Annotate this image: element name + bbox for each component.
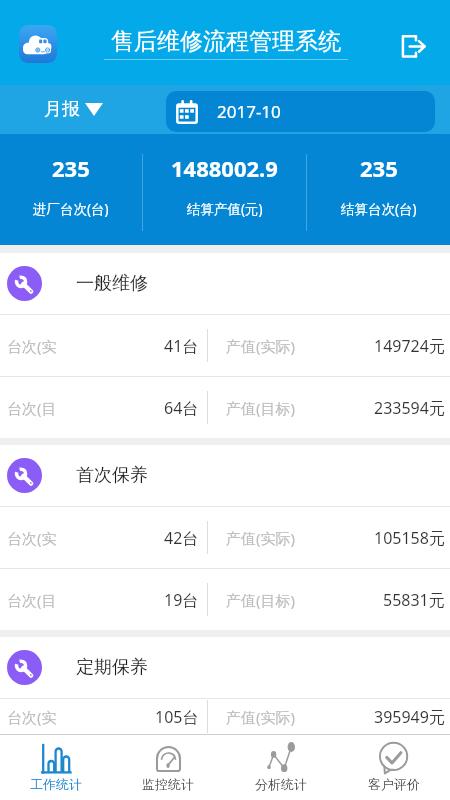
staticText: 41台 bbox=[164, 335, 199, 357]
staticText: 台次(实 bbox=[7, 707, 57, 727]
button[interactable]: 工作统计 bbox=[0, 735, 112, 800]
staticText: 台次(目 bbox=[7, 590, 57, 610]
button[interactable]: 台次(目 bbox=[0, 377, 450, 438]
staticText: 台次(实 bbox=[7, 336, 57, 356]
button[interactable]: 235 bbox=[307, 134, 450, 245]
staticText: 一般维修 bbox=[76, 272, 148, 295]
staticText: 64台 bbox=[164, 397, 199, 419]
button[interactable]: 235 bbox=[0, 134, 142, 245]
staticText: 42台 bbox=[164, 527, 199, 549]
staticText: 月报 bbox=[44, 98, 80, 121]
staticText: 1488002.9 bbox=[171, 153, 278, 183]
staticText: 395949元 bbox=[374, 706, 445, 728]
staticText: 产值(实际) bbox=[226, 528, 296, 548]
staticText: 2017-10 bbox=[217, 100, 281, 123]
button[interactable]: 一般维修 bbox=[0, 253, 450, 314]
button[interactable]: Logo bbox=[19, 25, 57, 63]
staticText: 产值(目标) bbox=[226, 398, 296, 418]
staticText: 产值(实际) bbox=[226, 707, 296, 727]
staticText: 149724元 bbox=[374, 335, 445, 357]
staticText: 55831元 bbox=[383, 589, 445, 611]
staticText: 233594元 bbox=[374, 397, 445, 419]
button[interactable]: 分析统计 bbox=[224, 735, 337, 800]
button[interactable]: 台次(实 bbox=[0, 699, 450, 734]
staticText: 结算台次(台) bbox=[341, 200, 417, 218]
staticText: 235 bbox=[52, 153, 90, 183]
staticText: 定期保养 bbox=[76, 656, 148, 679]
staticText: 235 bbox=[360, 153, 398, 183]
button[interactable]: 定期保养 bbox=[0, 637, 450, 698]
button[interactable]: 首次保养 bbox=[0, 445, 450, 506]
button[interactable]: 台次(目 bbox=[0, 569, 450, 630]
staticText: 105158元 bbox=[374, 527, 445, 549]
staticText: 售后维修流程管理系统 bbox=[111, 27, 341, 56]
button[interactable]: 2017-10 bbox=[166, 91, 435, 132]
staticText: 分析统计 bbox=[255, 776, 307, 792]
staticText: 结算产值(元) bbox=[187, 200, 263, 218]
staticText: 监控统计 bbox=[142, 776, 194, 792]
button[interactable]: 月报 bbox=[44, 98, 103, 121]
button[interactable]: 1488002.9 bbox=[143, 134, 306, 245]
button[interactable]: Logout bbox=[392, 23, 436, 67]
staticText: 105台 bbox=[155, 706, 199, 728]
staticText: 产值(实际) bbox=[226, 336, 296, 356]
staticText: 首次保养 bbox=[76, 464, 148, 487]
staticText: 台次(实 bbox=[7, 528, 57, 548]
staticText: 台次(目 bbox=[7, 398, 57, 418]
button[interactable]: 台次(实 bbox=[0, 507, 450, 568]
staticText: 客户评价 bbox=[368, 776, 420, 792]
staticText: 产值(目标) bbox=[226, 590, 296, 610]
staticText: 19台 bbox=[164, 589, 199, 611]
button[interactable]: 监控统计 bbox=[112, 735, 224, 800]
button[interactable]: 台次(实 bbox=[0, 315, 450, 376]
button[interactable]: 客户评价 bbox=[337, 735, 450, 800]
staticText: 工作统计 bbox=[30, 776, 82, 792]
staticText: 进厂台次(台) bbox=[33, 200, 109, 218]
